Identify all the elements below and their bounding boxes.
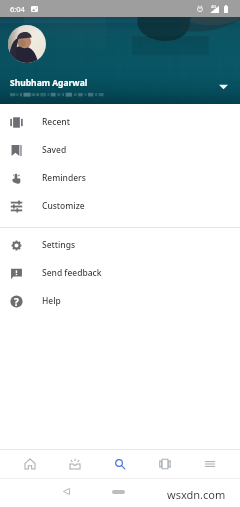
button[interactable]: Expand account list: [216, 80, 230, 94]
button[interactable]: Search: [108, 450, 132, 478]
staticText: Customize: [42, 200, 85, 212]
staticText: 6:04: [10, 4, 25, 14]
button[interactable]: Home: [18, 450, 42, 478]
button[interactable]: More options: [198, 450, 222, 478]
button[interactable]: Customize: [0, 192, 240, 220]
staticText: Settings: [42, 239, 76, 251]
staticText: Send feedback: [42, 267, 102, 279]
button[interactable]: Send feedback: [0, 259, 240, 287]
button[interactable]: ?: [0, 287, 240, 315]
button[interactable]: Back: [63, 488, 70, 495]
staticText: Help: [42, 295, 61, 307]
staticText: Saved: [42, 144, 67, 156]
staticText: Reminders: [42, 172, 86, 184]
staticText: ?: [14, 295, 19, 308]
button[interactable]: Home: [112, 490, 125, 494]
staticText: Recent: [42, 116, 70, 128]
button[interactable]: Settings: [0, 231, 240, 259]
button[interactable]: Recent: [0, 108, 240, 136]
staticText: Shubham Agarwal: [10, 77, 88, 89]
button[interactable]: Saved: [0, 136, 240, 164]
button[interactable]: Reminders: [0, 164, 240, 192]
button[interactable]: Discover: [63, 450, 87, 478]
staticText: wsxdn.com: [167, 487, 226, 502]
button[interactable]: Account: [8, 25, 46, 63]
staticText: 4G: [211, 4, 217, 9]
button[interactable]: Collections: [153, 450, 177, 478]
